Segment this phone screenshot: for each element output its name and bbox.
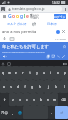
button[interactable]: .	[48, 106, 55, 119]
button[interactable]: h	[36, 80, 44, 93]
button[interactable]: g	[28, 80, 36, 93]
staticText: 17 / 5000	[55, 37, 66, 40]
button[interactable]: 日本語	[37, 22, 66, 26]
button[interactable]: ポルトガル語	[2, 22, 31, 26]
staticText: translate.google.co.jp	[12, 7, 45, 11]
staticText: b	[40, 98, 42, 102]
staticText: 年と私たちを許可します	[2, 44, 62, 49]
staticText: n	[47, 98, 49, 102]
staticText: ⏎	[60, 111, 63, 115]
staticText: x	[19, 98, 21, 102]
button[interactable]: q	[0, 66, 6, 80]
button[interactable]: o	[54, 66, 61, 80]
staticText: k	[55, 85, 57, 89]
staticText: o	[12, 13, 16, 20]
staticText: g	[31, 85, 33, 89]
staticText: Toshi to watashitachi o kyoka shimasu	[2, 50, 45, 53]
button[interactable]: Clipboard	[7, 62, 11, 66]
button[interactable]: w	[6, 66, 12, 80]
button[interactable]: More options	[63, 7, 67, 11]
button[interactable]: b	[37, 93, 44, 106]
button[interactable]: m	[51, 93, 58, 106]
staticText: ログイン	[54, 15, 66, 19]
staticText: ,	[12, 111, 13, 115]
staticText: e	[15, 71, 17, 75]
staticText: l	[64, 85, 65, 89]
staticText: v	[33, 98, 35, 102]
button[interactable]: ⏎	[55, 106, 68, 119]
button[interactable]: Keyboard	[9, 36, 14, 41]
staticText: z	[12, 98, 14, 102]
button[interactable]: l	[60, 80, 68, 93]
button[interactable]: d	[14, 80, 21, 93]
staticText: ポルトガル語	[7, 22, 27, 26]
staticText: u	[43, 71, 45, 75]
staticText: h	[39, 85, 41, 89]
staticText: 🌐	[18, 111, 22, 115]
button[interactable]: Share	[51, 54, 56, 59]
button[interactable]: ログイン	[54, 14, 66, 19]
button[interactable]: x	[16, 93, 23, 106]
button[interactable]: Save translation	[62, 44, 67, 49]
button[interactable]: u	[40, 66, 47, 80]
staticText: m	[53, 98, 56, 102]
staticText: f	[24, 85, 26, 89]
button[interactable]: y	[33, 66, 40, 80]
button[interactable]: Swap languages	[31, 21, 37, 27]
button[interactable]: Tabs	[1, 7, 5, 11]
button[interactable]: ,	[9, 106, 16, 119]
button[interactable]: Clear	[61, 29, 66, 34]
button[interactable]: f	[21, 80, 28, 93]
button[interactable]: i	[47, 66, 54, 80]
staticText: o	[16, 13, 20, 20]
staticText: ⇧	[3, 98, 6, 102]
button[interactable]: t	[26, 66, 33, 80]
button[interactable]: k	[52, 80, 60, 93]
button[interactable]: Translate	[55, 29, 60, 34]
button[interactable]: ⇧	[0, 93, 9, 106]
staticText: 日本語	[47, 22, 57, 26]
button[interactable]: z	[9, 93, 16, 106]
staticText: 14:32	[52, 1, 60, 5]
staticText: o	[57, 71, 59, 75]
button[interactable]: s	[7, 80, 14, 93]
staticText: d	[17, 85, 19, 89]
button[interactable]: translate.google.co.jp	[6, 6, 62, 12]
button[interactable]: p	[61, 66, 68, 80]
button[interactable]: v	[30, 93, 37, 106]
staticText: t	[29, 71, 31, 75]
staticText: .	[51, 111, 52, 115]
staticText: g	[20, 13, 24, 20]
staticText: G	[8, 13, 12, 20]
button[interactable]: ⌫	[58, 93, 68, 106]
staticText: i	[50, 71, 51, 75]
button[interactable]: Voice input	[2, 36, 7, 41]
staticText: j	[48, 85, 49, 89]
staticText: y	[36, 71, 38, 75]
button[interactable]: Keyboard settings	[63, 62, 67, 66]
button[interactable]: a	[0, 80, 7, 93]
staticText: ano a nos permita	[2, 29, 55, 34]
button[interactable]: Full screen	[56, 54, 61, 59]
button[interactable]: Listen	[2, 54, 7, 59]
staticText: 翻訳	[30, 14, 39, 20]
staticText: r	[22, 71, 24, 75]
button[interactable]: j	[44, 80, 52, 93]
staticText: w	[8, 71, 11, 75]
button[interactable]: c	[23, 93, 30, 106]
staticText: c	[26, 98, 28, 102]
button[interactable]: Edit	[61, 54, 66, 59]
button[interactable]: 🌐	[16, 106, 23, 119]
staticText: q	[2, 71, 4, 75]
button[interactable]: Voice typing	[1, 62, 5, 66]
button[interactable]: n	[44, 93, 51, 106]
button[interactable]: r	[19, 66, 26, 80]
staticText: ?1☺	[1, 111, 8, 115]
staticText: 4	[2, 8, 4, 11]
button[interactable]: Menu	[2, 14, 7, 19]
staticText: ⌫	[61, 98, 66, 102]
button[interactable]: e	[12, 66, 19, 80]
button[interactable]: Copy	[46, 54, 51, 59]
button[interactable]: ?1☺	[0, 106, 9, 119]
